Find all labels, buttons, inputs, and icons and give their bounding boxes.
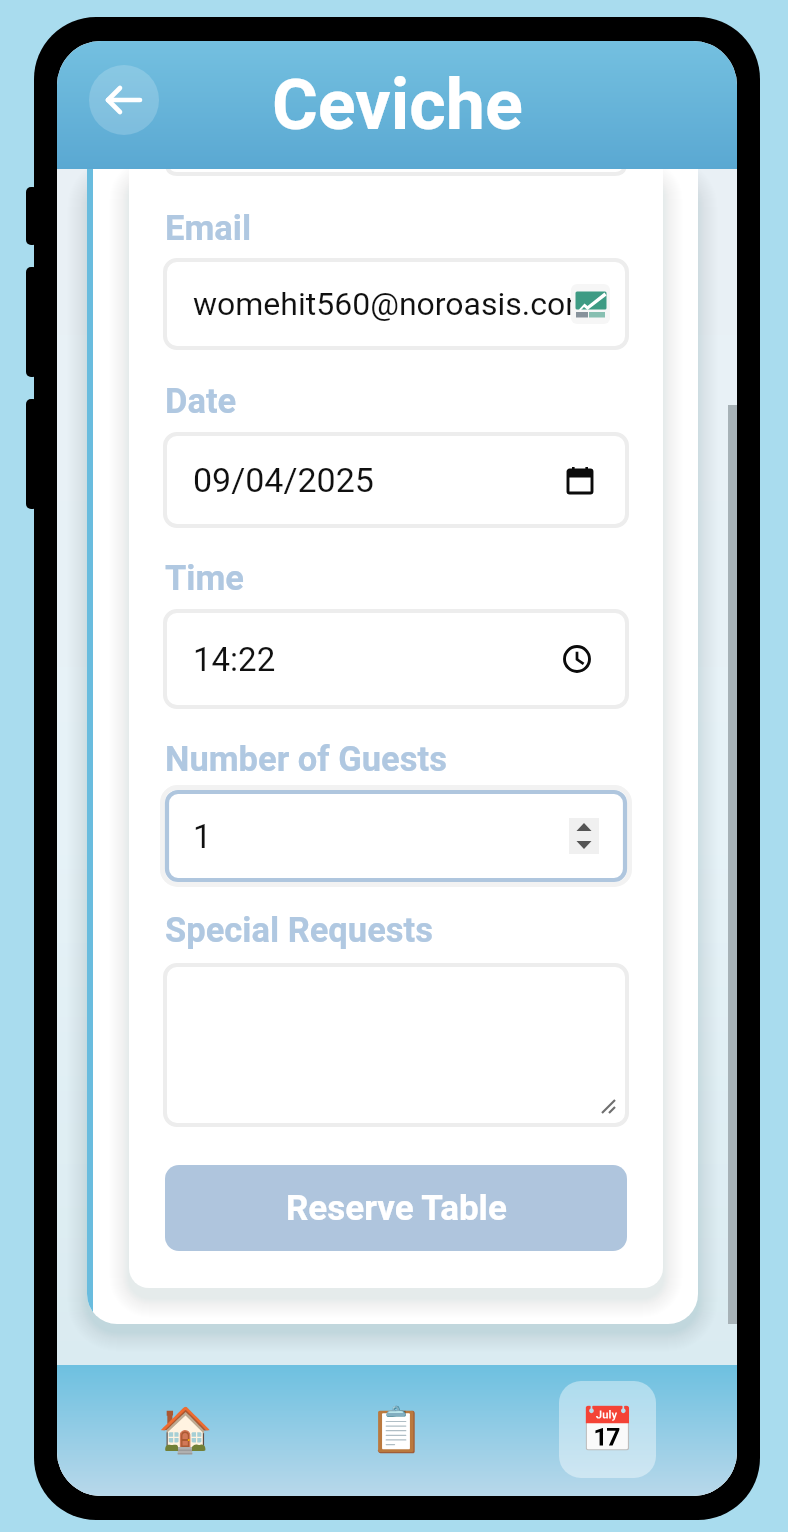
button[interactable]: Orders	[291, 1365, 502, 1496]
staticText: 🏠	[158, 1404, 213, 1456]
staticText: 📋	[369, 1404, 424, 1456]
button[interactable]: womehit560@noroasis.com	[165, 260, 627, 348]
staticText: Email	[165, 208, 252, 248]
button[interactable]: Reserve Table	[165, 1165, 627, 1251]
button[interactable]: Home	[80, 1365, 291, 1496]
staticText: 14:22	[193, 640, 276, 679]
staticText: Special Requests	[165, 910, 433, 950]
staticText: Ceviche	[272, 64, 523, 146]
button[interactable]	[165, 965, 627, 1125]
staticText: 📅	[580, 1404, 635, 1456]
staticText: Number of Guests	[165, 739, 447, 779]
button[interactable]: 14:22	[165, 611, 627, 707]
button[interactable]: Back	[89, 65, 159, 135]
staticText: Date	[165, 381, 237, 421]
staticText: 1	[193, 817, 212, 856]
staticText: womehit560@noroasis.com	[193, 285, 594, 323]
staticText: 09/04/2025	[193, 460, 374, 500]
button[interactable]: 09/04/2025	[165, 434, 627, 526]
button[interactable]: 1	[165, 790, 627, 882]
staticText: Time	[165, 558, 245, 598]
staticText: Reserve Table	[286, 1188, 507, 1229]
button[interactable]: Reservations	[502, 1365, 713, 1496]
